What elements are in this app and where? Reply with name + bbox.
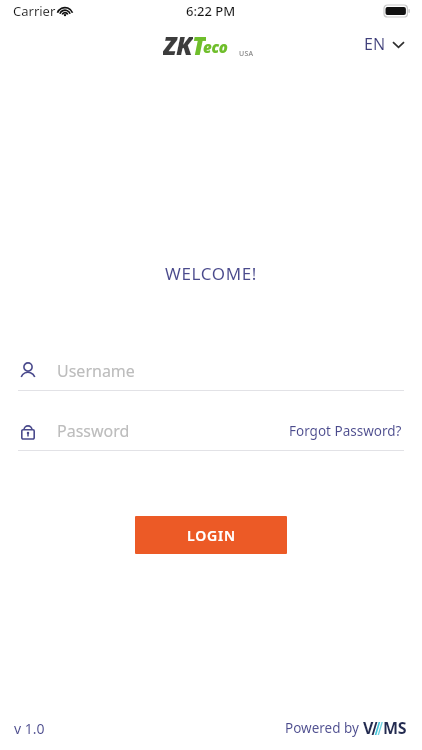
staticText: eco <box>203 37 228 57</box>
other: Wi-Fi signal <box>57 5 73 17</box>
button[interactable]: EN <box>360 29 408 59</box>
staticText: Password <box>57 420 130 442</box>
button[interactable]: LOGIN <box>135 516 287 554</box>
other: Battery full <box>384 5 410 17</box>
other: Password <box>18 421 38 441</box>
staticText: V <box>363 717 373 739</box>
button[interactable]: Username <box>18 352 404 390</box>
staticText: MS <box>383 717 407 739</box>
button[interactable]: Password <box>18 420 287 442</box>
staticText: LOGIN <box>187 526 236 545</box>
button[interactable]: Forgot Password? <box>287 416 404 446</box>
staticText: Username <box>57 360 135 382</box>
staticText: Powered by <box>285 719 363 737</box>
other: Username <box>18 361 38 381</box>
staticText: T <box>192 28 206 58</box>
staticText: Forgot Password? <box>289 422 402 440</box>
staticText: ZK <box>163 28 193 58</box>
staticText: Carrier <box>13 2 56 20</box>
staticText: WELCOME! <box>165 262 257 285</box>
staticText: 6:22 PM <box>186 2 236 20</box>
staticText: v 1.0 <box>14 719 45 738</box>
staticText: EN <box>364 33 386 55</box>
staticText: USA <box>239 49 254 59</box>
